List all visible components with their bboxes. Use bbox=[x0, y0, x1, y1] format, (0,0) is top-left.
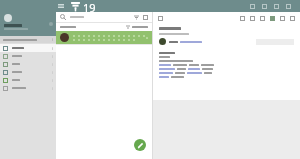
button[interactable] bbox=[0, 68, 56, 76]
button[interactable] bbox=[0, 52, 56, 60]
button[interactable]: Expand account list bbox=[49, 22, 53, 26]
button[interactable]: Expand account list bbox=[0, 12, 56, 36]
button[interactable]: Reply bbox=[250, 16, 255, 21]
button[interactable]: Archive bbox=[240, 16, 245, 21]
button[interactable]: More bbox=[290, 16, 295, 21]
button[interactable]: Help bbox=[274, 4, 279, 9]
button[interactable] bbox=[0, 84, 56, 92]
button[interactable]: More options bbox=[286, 4, 291, 9]
button[interactable]: Filter bbox=[134, 15, 139, 20]
button[interactable]: Reply all bbox=[260, 16, 265, 21]
button[interactable]: Filter bbox=[56, 12, 152, 22]
button[interactable] bbox=[0, 60, 56, 68]
button[interactable]: Compose bbox=[134, 139, 146, 151]
button[interactable]: Back bbox=[158, 16, 163, 21]
button[interactable] bbox=[0, 36, 56, 43]
button[interactable] bbox=[56, 31, 152, 44]
button[interactable]: Move bbox=[280, 16, 285, 21]
button[interactable]: App logo bbox=[70, 1, 81, 12]
button[interactable] bbox=[0, 76, 56, 84]
staticText: 19 bbox=[83, 0, 96, 12]
button[interactable]: Settings bbox=[143, 15, 148, 20]
button[interactable]: Account bbox=[262, 4, 267, 9]
button[interactable]: Search bbox=[250, 4, 255, 9]
button[interactable]: Navigation menu bbox=[58, 3, 64, 9]
button[interactable] bbox=[0, 44, 56, 52]
